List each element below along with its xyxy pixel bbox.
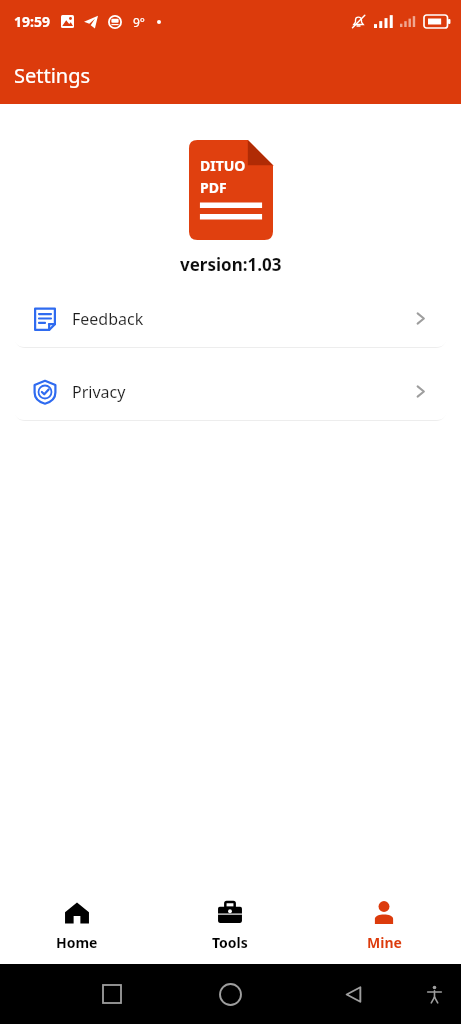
button[interactable]: Back — [344, 985, 363, 1004]
staticText: Home — [56, 933, 98, 952]
staticText: Tools — [212, 933, 248, 952]
button[interactable]: Tools — [153, 888, 307, 964]
staticText: Settings — [14, 62, 91, 89]
staticText: 9° — [133, 14, 146, 30]
button[interactable]: Privacy — [13, 363, 448, 420]
button[interactable]: Feedback — [13, 290, 448, 347]
button[interactable]: Recent apps — [103, 985, 121, 1003]
staticText: PDF — [200, 178, 227, 197]
staticText: 19:59 — [14, 12, 50, 31]
staticText: Privacy — [72, 381, 126, 403]
staticText: Feedback — [72, 308, 144, 330]
button[interactable]: Home — [0, 888, 153, 964]
staticText: DITUO — [200, 156, 246, 175]
button[interactable]: Home — [220, 984, 241, 1005]
staticText: version:1.03 — [180, 253, 282, 276]
button[interactable]: Accessibility — [425, 985, 444, 1004]
button[interactable]: Mine — [307, 888, 461, 964]
staticText: Mine — [367, 933, 402, 952]
